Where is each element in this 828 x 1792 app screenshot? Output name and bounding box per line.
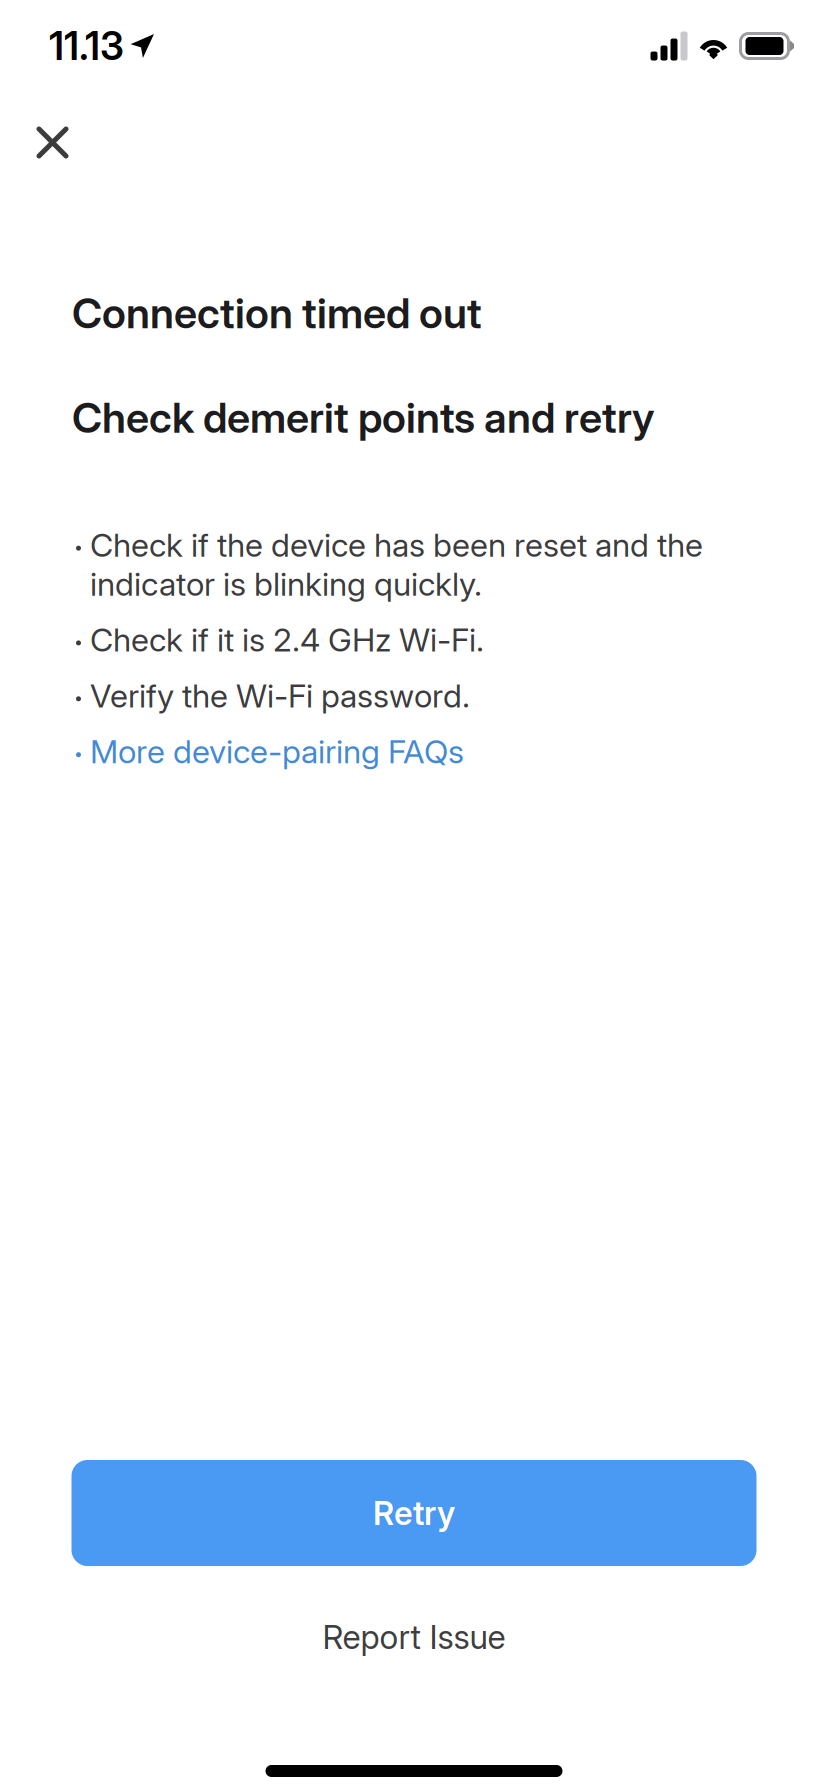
staticText: Retry <box>373 1493 455 1533</box>
button[interactable]: Report Issue <box>71 1599 756 1675</box>
staticText: Check demerit points and retry <box>72 392 655 443</box>
staticText: Report Issue <box>322 1617 505 1657</box>
staticText: Check if it is 2.4 GHz Wi-Fi. <box>90 620 484 659</box>
button[interactable]: Retry <box>71 1460 756 1566</box>
button[interactable]: Close <box>2 92 103 193</box>
staticText: Connection timed out <box>72 288 482 338</box>
staticText: Check if the device has been reset and t… <box>90 526 703 603</box>
staticText: 11.13 <box>49 23 124 69</box>
staticText: Verify the Wi-Fi password. <box>90 676 470 715</box>
button[interactable]: More device-pairing FAQs <box>76 732 730 771</box>
staticText: More device-pairing FAQs <box>90 732 464 771</box>
